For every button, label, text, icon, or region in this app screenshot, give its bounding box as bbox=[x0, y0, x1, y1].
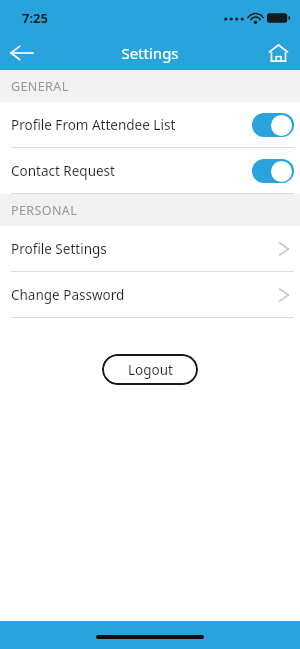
button[interactable]: Contact Request bbox=[0, 148, 300, 193]
button[interactable]: Logout bbox=[102, 354, 198, 385]
staticText: GENERAL bbox=[11, 78, 69, 95]
button[interactable]: Back bbox=[0, 36, 44, 70]
staticText: 7:25 bbox=[22, 9, 48, 27]
staticText: PERSONAL bbox=[11, 202, 78, 219]
staticText: Profile Settings bbox=[11, 240, 278, 258]
button[interactable]: Toggle bbox=[252, 113, 294, 137]
button[interactable]: Profile From Attendee List bbox=[0, 102, 300, 147]
staticText: Logout bbox=[128, 361, 173, 379]
button[interactable]: Home bbox=[256, 36, 300, 70]
staticText: Settings bbox=[121, 43, 179, 63]
button[interactable]: Profile Settings bbox=[0, 226, 300, 271]
staticText: Contact Request bbox=[11, 162, 252, 180]
button[interactable]: Toggle bbox=[252, 159, 294, 183]
button[interactable]: Change Password bbox=[0, 272, 300, 317]
staticText: Change Password bbox=[11, 286, 278, 304]
staticText: Profile From Attendee List bbox=[11, 116, 252, 134]
